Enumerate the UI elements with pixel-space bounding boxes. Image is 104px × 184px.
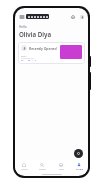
button[interactable]: Profile xyxy=(70,160,88,173)
staticText: Files xyxy=(59,168,64,171)
button[interactable]: Account xyxy=(78,13,85,20)
button[interactable]: Search xyxy=(33,160,51,173)
button[interactable]: Recently Opened xyxy=(18,42,85,64)
staticText: Olivia Diya xyxy=(19,30,52,38)
button[interactable]: Files xyxy=(52,160,70,173)
staticText: Hello xyxy=(19,25,27,29)
staticText: View Detail xyxy=(21,60,37,61)
button[interactable]: Menu xyxy=(18,13,25,20)
staticText: 2021 xyxy=(21,54,27,57)
button[interactable]: Home xyxy=(15,160,33,173)
button[interactable]: View Detail xyxy=(21,60,37,61)
staticText: Recently Opened xyxy=(29,46,57,51)
button[interactable]: Preview xyxy=(60,45,82,59)
button[interactable]: Workspace xyxy=(26,14,49,19)
button[interactable]: Notifications xyxy=(69,13,76,20)
staticText: Search xyxy=(39,168,46,171)
staticText: Profile xyxy=(76,168,83,171)
staticText: Home xyxy=(21,168,28,171)
button[interactable]: Create new xyxy=(74,149,83,158)
